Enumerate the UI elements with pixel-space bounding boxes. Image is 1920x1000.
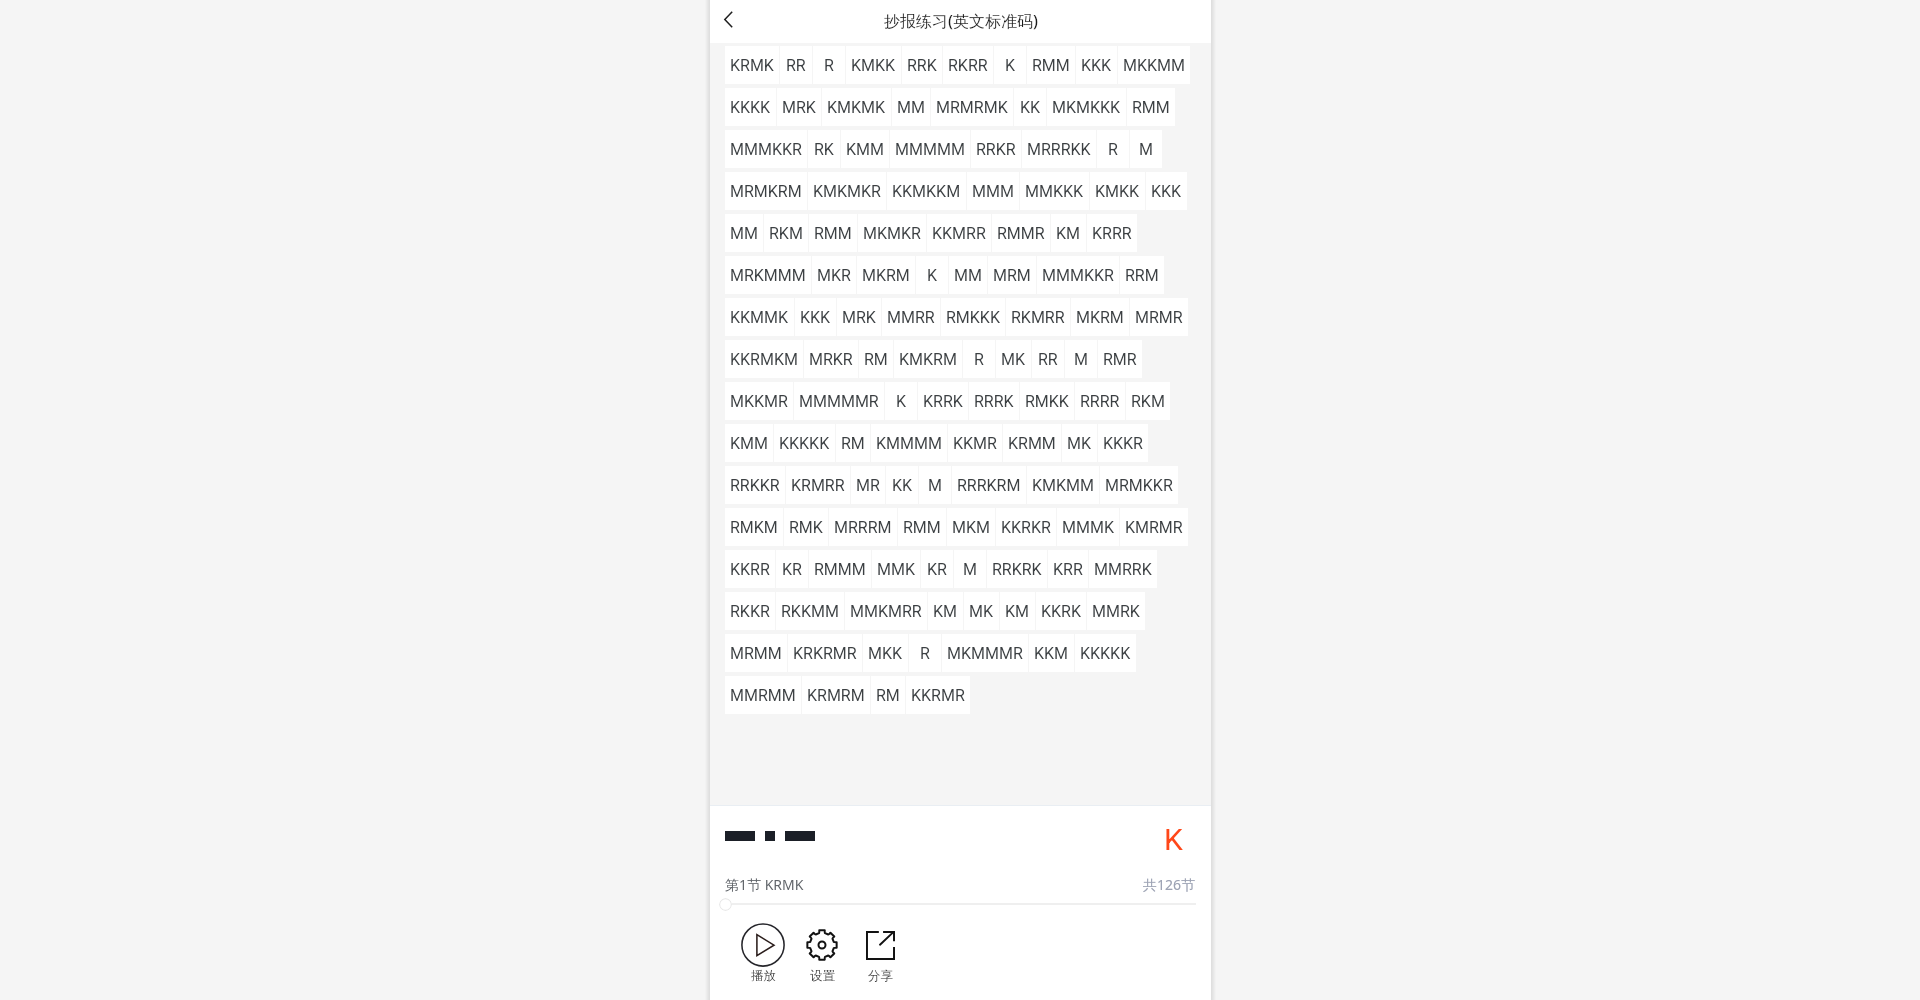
button[interactable]: RKKMM — [776, 592, 844, 630]
button[interactable]: MRM — [988, 256, 1036, 294]
button[interactable]: MM — [949, 256, 987, 294]
button[interactable]: KRKRMR — [788, 634, 862, 672]
button[interactable]: KRRK — [918, 382, 968, 420]
button[interactable]: RKM — [1126, 382, 1170, 420]
button[interactable]: MKMMMR — [942, 634, 1028, 672]
button[interactable]: MKR — [812, 256, 856, 294]
button[interactable]: M — [954, 550, 986, 588]
button[interactable]: RMM — [1127, 88, 1175, 126]
button[interactable]: MRMKKR — [1100, 466, 1178, 504]
button[interactable]: KR — [921, 550, 953, 588]
button[interactable]: KM — [928, 592, 963, 630]
button[interactable]: KKMRR — [927, 214, 991, 252]
button[interactable]: KRR — [1048, 550, 1088, 588]
button[interactable]: RMR — [1098, 340, 1142, 378]
button[interactable]: KMM — [725, 424, 773, 462]
button[interactable]: KRMK — [725, 46, 779, 84]
button[interactable]: MRK — [777, 88, 821, 126]
button[interactable]: RMKKK — [941, 298, 1005, 336]
button[interactable]: RKKR — [725, 592, 775, 630]
button[interactable]: KKRK — [1036, 592, 1086, 630]
button[interactable]: KMM — [841, 130, 889, 168]
button[interactable]: RMMM — [809, 550, 871, 588]
button[interactable]: KR — [776, 550, 808, 588]
button[interactable]: MRK — [837, 298, 881, 336]
button[interactable]: K — [885, 382, 917, 420]
button[interactable]: M — [919, 466, 951, 504]
button[interactable]: MMRR — [882, 298, 940, 336]
button[interactable]: KKRR — [725, 550, 775, 588]
button[interactable]: MRRRKK — [1022, 130, 1096, 168]
button[interactable]: MKMKR — [858, 214, 926, 252]
button[interactable]: RMKK — [1020, 382, 1074, 420]
button[interactable]: MKRM — [857, 256, 915, 294]
button[interactable]: RRRR — [1075, 382, 1125, 420]
button[interactable]: MKK — [863, 634, 908, 672]
button[interactable]: R — [1097, 130, 1129, 168]
button[interactable]: KKMR — [948, 424, 1002, 462]
button[interactable]: RRM — [1120, 256, 1164, 294]
button[interactable]: MMKKK — [1020, 172, 1089, 210]
button[interactable]: Share — [854, 923, 906, 984]
button[interactable]: KM — [1051, 214, 1086, 252]
button[interactable]: MKMKKK — [1047, 88, 1126, 126]
button[interactable]: Back — [710, 0, 752, 43]
button[interactable]: R — [813, 46, 845, 84]
button[interactable]: KKKR — [1098, 424, 1148, 462]
button[interactable]: KRRR — [1087, 214, 1137, 252]
button[interactable]: Settings — [796, 923, 848, 984]
button[interactable]: KRMRM — [802, 676, 870, 714]
button[interactable]: MMRMM — [725, 676, 801, 714]
button[interactable]: KKKKK — [1075, 634, 1136, 672]
button[interactable]: KMKRM — [894, 340, 962, 378]
button[interactable]: MMMMMR — [794, 382, 884, 420]
button[interactable]: KK — [1014, 88, 1046, 126]
button[interactable]: RRK — [902, 46, 942, 84]
button[interactable]: M — [1065, 340, 1097, 378]
button[interactable]: MM — [892, 88, 930, 126]
button[interactable]: MMM — [967, 172, 1019, 210]
button[interactable]: RR — [780, 46, 812, 84]
button[interactable]: KKM — [1029, 634, 1074, 672]
button[interactable]: RMK — [784, 508, 828, 546]
button[interactable]: MMRRK — [1089, 550, 1157, 588]
button[interactable]: M — [1130, 130, 1162, 168]
button[interactable]: RM — [836, 424, 870, 462]
button[interactable]: KKMKKM — [887, 172, 966, 210]
button[interactable]: MRMR — [1130, 298, 1188, 336]
button[interactable]: KMKMK — [822, 88, 891, 126]
button[interactable]: RKM — [764, 214, 808, 252]
button[interactable]: RKRR — [943, 46, 993, 84]
button[interactable]: K — [916, 256, 948, 294]
button[interactable]: RMM — [809, 214, 857, 252]
button[interactable]: KKRMKM — [725, 340, 803, 378]
button[interactable]: RK — [808, 130, 840, 168]
button[interactable]: MMMMM — [890, 130, 970, 168]
button[interactable]: MRKMMM — [725, 256, 811, 294]
button[interactable]: KMKMKR — [808, 172, 886, 210]
button[interactable]: RRKR — [971, 130, 1021, 168]
button[interactable]: KKRMR — [906, 676, 970, 714]
button[interactable]: RMKM — [725, 508, 783, 546]
button[interactable]: RR — [1032, 340, 1064, 378]
button[interactable]: MRMRMK — [931, 88, 1013, 126]
button[interactable]: R — [963, 340, 995, 378]
button[interactable]: KKK — [1146, 172, 1187, 210]
button[interactable]: K — [994, 46, 1026, 84]
button[interactable]: RM — [871, 676, 905, 714]
button[interactable]: KMKMM — [1027, 466, 1099, 504]
button[interactable]: MKKMM — [1118, 46, 1190, 84]
button[interactable]: MMKMRR — [845, 592, 927, 630]
button[interactable]: MKRM — [1071, 298, 1129, 336]
button[interactable]: KMMMM — [871, 424, 947, 462]
button[interactable]: RMM — [898, 508, 946, 546]
button[interactable]: MRMM — [725, 634, 787, 672]
button[interactable]: KRMRR — [786, 466, 850, 504]
button[interactable]: MRRRM — [829, 508, 897, 546]
button[interactable]: MRKR — [804, 340, 858, 378]
button[interactable]: MKKMR — [725, 382, 793, 420]
button[interactable]: RMMR — [992, 214, 1050, 252]
button[interactable]: MMMK — [1057, 508, 1119, 546]
button[interactable]: RRRK — [969, 382, 1019, 420]
button[interactable]: KKKK — [725, 88, 776, 126]
